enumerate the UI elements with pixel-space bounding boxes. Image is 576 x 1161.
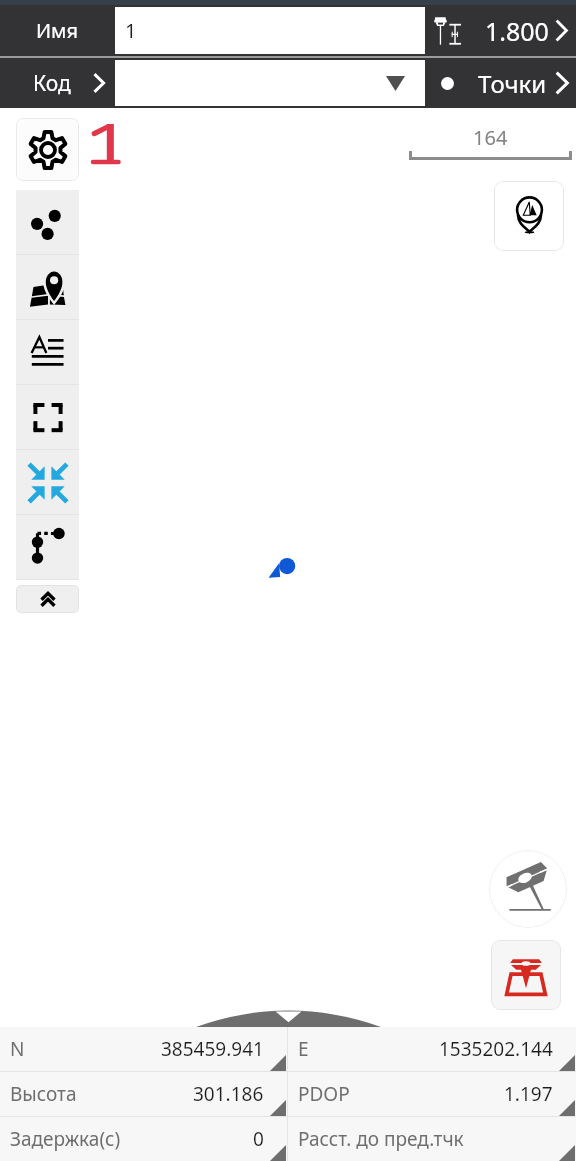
button[interactable]: N <box>0 1027 287 1071</box>
button[interactable] <box>115 60 425 106</box>
staticText: 0 <box>253 1126 264 1152</box>
staticText: Точки <box>478 67 547 100</box>
staticText: 164 <box>473 124 508 151</box>
button[interactable]: Settings <box>16 118 79 181</box>
button[interactable]: Measure point <box>489 850 567 928</box>
staticText: N <box>10 1036 25 1062</box>
staticText: Имя <box>36 17 79 44</box>
button[interactable]: 1 <box>115 7 425 54</box>
staticText: E <box>298 1036 309 1062</box>
button[interactable]: Compass <box>494 181 564 251</box>
button[interactable]: Route <box>16 515 79 580</box>
button[interactable]: Collapse panel <box>196 1005 381 1027</box>
button[interactable]: Map layers <box>16 255 79 320</box>
staticText: Высота <box>10 1081 77 1107</box>
button[interactable]: Расст. до пред.тчк <box>288 1117 576 1161</box>
staticText: PDOP <box>298 1081 350 1107</box>
button[interactable]: PDOP <box>288 1072 576 1116</box>
staticText: 1535202.144 <box>439 1036 553 1062</box>
staticText: Расст. до пред.тчк <box>298 1126 464 1152</box>
button[interactable]: Stake out point <box>491 940 561 1010</box>
button[interactable]: Код <box>0 58 115 108</box>
staticText: 301.186 <box>193 1081 264 1107</box>
staticText: 1.800 <box>485 14 549 48</box>
staticText: Задержка(с) <box>10 1126 121 1152</box>
button[interactable]: E <box>288 1027 576 1071</box>
button[interactable]: Имя <box>0 5 115 56</box>
button[interactable]: Zoom to extent <box>16 450 79 515</box>
button[interactable]: Fit screen <box>16 385 79 450</box>
button[interactable]: Высота <box>0 1072 287 1116</box>
staticText: 385459.941 <box>161 1036 264 1062</box>
button[interactable]: Collapse toolbar <box>16 585 79 613</box>
button[interactable]: Точки <box>425 58 576 108</box>
button[interactable]: Задержка(с) <box>0 1117 287 1161</box>
button[interactable]: Labels <box>16 320 79 385</box>
button[interactable]: Points <box>16 190 79 255</box>
button[interactable]: 1.800 <box>425 5 576 56</box>
staticText: 1.197 <box>504 1081 553 1107</box>
staticText: 1 <box>125 17 137 44</box>
staticText: Код <box>33 69 71 98</box>
